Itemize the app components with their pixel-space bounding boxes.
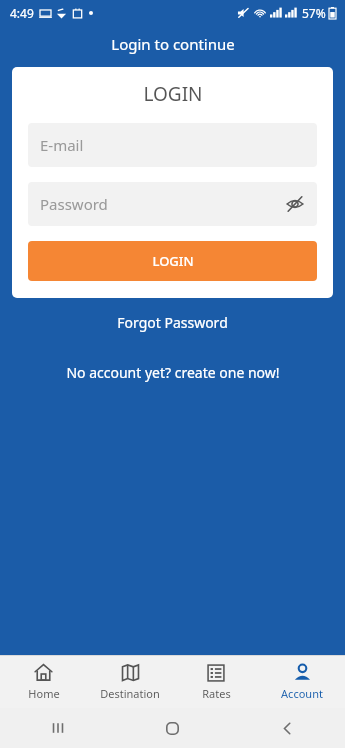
- staticText: Destination: [100, 686, 160, 701]
- button[interactable]: No account yet? create one now!: [0, 363, 345, 382]
- button[interactable]: Back: [230, 708, 345, 748]
- button[interactable]: Rates: [173, 656, 259, 708]
- staticText: 4:49: [10, 5, 34, 21]
- staticText: LOGIN: [152, 252, 194, 270]
- button[interactable]: E-mail: [28, 123, 317, 167]
- button[interactable]: Recent apps: [0, 708, 115, 748]
- button[interactable]: Account: [259, 656, 345, 708]
- staticText: Rates: [202, 686, 231, 701]
- staticText: Login to continue: [111, 34, 235, 54]
- button[interactable]: Destination: [87, 656, 173, 708]
- button[interactable]: Password: [28, 182, 317, 226]
- staticText: Forgot Password: [117, 313, 228, 332]
- staticText: Password: [40, 194, 108, 214]
- staticText: LOGIN: [143, 81, 203, 107]
- button[interactable]: LOGIN: [28, 241, 317, 281]
- staticText: E-mail: [40, 135, 84, 155]
- button[interactable]: Home: [0, 656, 87, 708]
- staticText: 57%: [302, 5, 326, 21]
- staticText: Account: [281, 686, 323, 701]
- staticText: No account yet? create one now!: [66, 363, 280, 382]
- button[interactable]: Forgot Password: [0, 313, 345, 332]
- button[interactable]: Toggle password visibility: [283, 192, 307, 216]
- button[interactable]: Home: [115, 708, 230, 748]
- staticText: Home: [28, 686, 60, 701]
